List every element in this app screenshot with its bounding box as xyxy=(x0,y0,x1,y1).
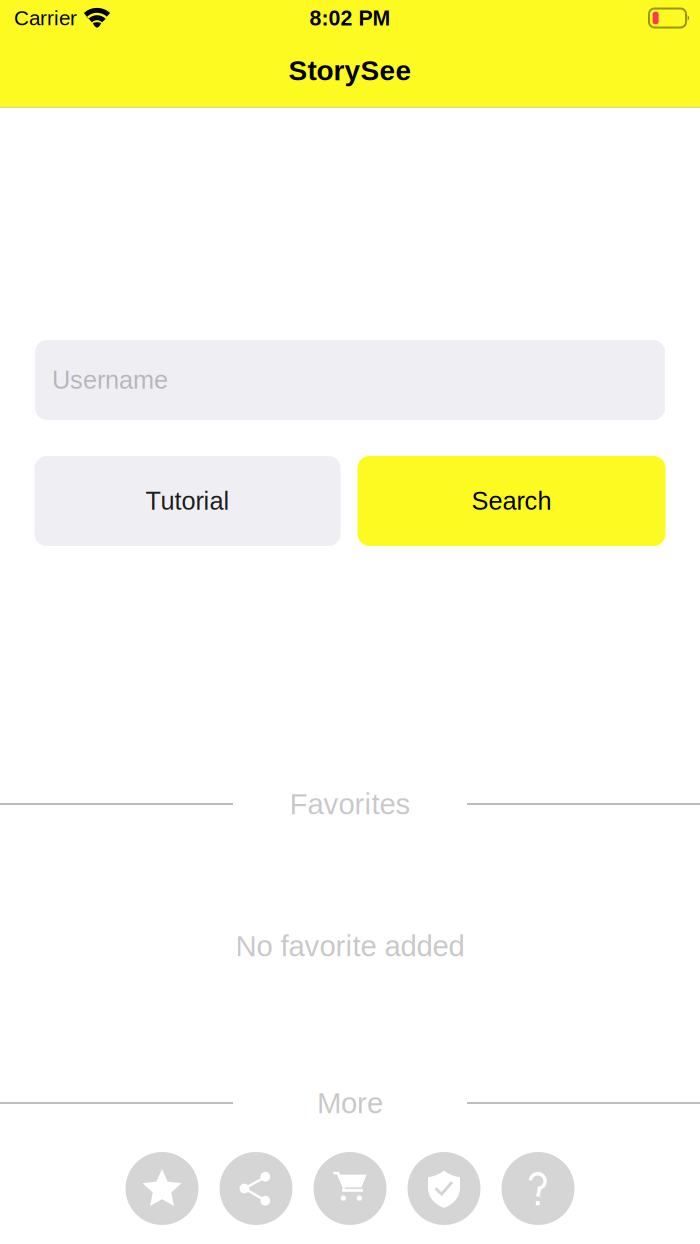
staticText: Carrier xyxy=(14,6,77,30)
staticText: Favorites xyxy=(289,788,410,820)
staticText: StorySee xyxy=(288,55,411,86)
button[interactable]: Favorites xyxy=(125,1152,198,1225)
staticText: More xyxy=(317,1087,383,1119)
button[interactable]: Privacy xyxy=(407,1152,480,1225)
button[interactable]: Username xyxy=(35,340,665,420)
button[interactable]: Tutorial xyxy=(34,456,340,546)
button[interactable]: Store xyxy=(313,1152,386,1225)
button[interactable]: Help xyxy=(501,1152,574,1225)
staticText: 8:02 PM xyxy=(309,6,390,30)
button[interactable]: Search xyxy=(357,456,665,546)
staticText: Search xyxy=(471,487,551,515)
staticText: Tutorial xyxy=(145,487,229,515)
staticText: Username xyxy=(52,366,168,394)
button[interactable]: Share xyxy=(219,1152,292,1225)
staticText: No favorite added xyxy=(235,930,464,962)
